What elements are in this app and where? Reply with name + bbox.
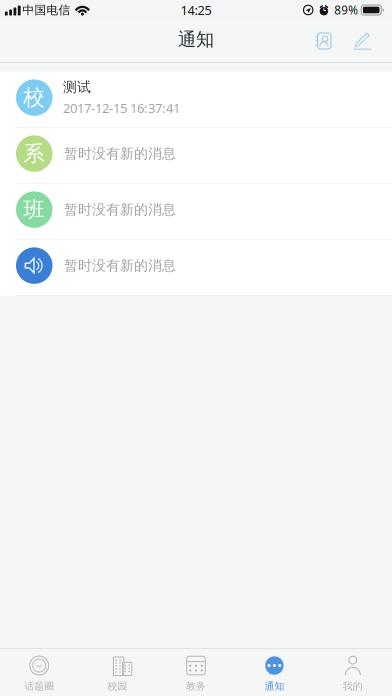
staticText: 话题圈 bbox=[24, 680, 54, 692]
staticText: 暂时没有新的消息 bbox=[64, 145, 176, 162]
button[interactable]: 班 bbox=[0, 184, 392, 240]
button[interactable]: Contacts bbox=[305, 21, 341, 61]
staticText: 14:25 bbox=[180, 1, 211, 19]
staticText: 我的 bbox=[343, 680, 363, 692]
button[interactable]: 我的 bbox=[314, 649, 392, 696]
staticText: 校园 bbox=[108, 680, 128, 692]
staticText: 89% bbox=[334, 2, 358, 18]
staticText: 通知 bbox=[264, 680, 284, 692]
button[interactable]: 系 bbox=[0, 128, 392, 184]
staticText: 2017-12-15 16:37:41 bbox=[63, 99, 180, 117]
button[interactable]: 话题圈 bbox=[0, 649, 78, 696]
staticText: 中国电信 bbox=[22, 3, 70, 17]
staticText: 通知 bbox=[178, 28, 214, 51]
button[interactable]: 教务 bbox=[157, 649, 235, 696]
button[interactable]: 校园 bbox=[78, 649, 157, 696]
staticText: 暂时没有新的消息 bbox=[64, 201, 176, 218]
staticText: 系 bbox=[23, 140, 45, 167]
staticText: 教务 bbox=[186, 680, 206, 692]
staticText: 校 bbox=[23, 84, 45, 111]
staticText: 测试 bbox=[63, 78, 91, 96]
button[interactable]: 通知 bbox=[235, 649, 314, 696]
button[interactable]: 校 bbox=[0, 72, 392, 128]
button[interactable]: Compose bbox=[345, 21, 381, 61]
staticText: 班 bbox=[23, 196, 45, 223]
button[interactable]: 暂时没有新的消息 bbox=[0, 240, 392, 296]
staticText: 暂时没有新的消息 bbox=[64, 257, 176, 274]
